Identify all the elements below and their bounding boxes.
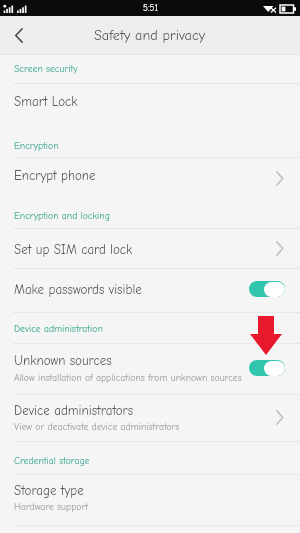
- button[interactable]: Make passwords visible: [0, 268, 300, 312]
- staticText: Hardware support: [14, 501, 89, 512]
- button[interactable]: Trusted credentials: [0, 525, 300, 533]
- staticText: View or deactivate device administrators: [14, 421, 180, 432]
- staticText: Storage type: [14, 483, 84, 498]
- button[interactable]: Toggle: [249, 281, 285, 297]
- button[interactable]: Back: [0, 16, 38, 54]
- button[interactable]: Set up SIM card lock: [0, 228, 300, 268]
- staticText: Smart Lock: [14, 94, 78, 109]
- button[interactable]: Encrypt phone: [0, 157, 300, 200]
- staticText: Unknown sources: [14, 353, 112, 368]
- staticText: Device administrators: [14, 403, 134, 418]
- button[interactable]: Unknown sources: [0, 343, 300, 394]
- staticText: Device administration: [14, 323, 103, 334]
- button[interactable]: Toggle: [249, 360, 285, 376]
- button[interactable]: Smart Lock: [0, 83, 300, 126]
- staticText: Encrypt phone: [14, 168, 96, 183]
- staticText: Make passwords visible: [14, 282, 142, 297]
- staticText: Encryption and locking: [14, 210, 110, 221]
- staticText: Safety and privacy: [94, 27, 206, 43]
- staticText: Screen security: [14, 63, 78, 74]
- staticText: Credential storage: [14, 455, 90, 466]
- staticText: 5:51: [143, 3, 158, 13]
- staticText: Encryption: [14, 140, 59, 151]
- button[interactable]: Storage type: [0, 474, 300, 525]
- staticText: Allow installation of applications from …: [14, 372, 242, 383]
- staticText: Set up SIM card lock: [14, 242, 133, 257]
- button[interactable]: Device administrators: [0, 394, 300, 441]
